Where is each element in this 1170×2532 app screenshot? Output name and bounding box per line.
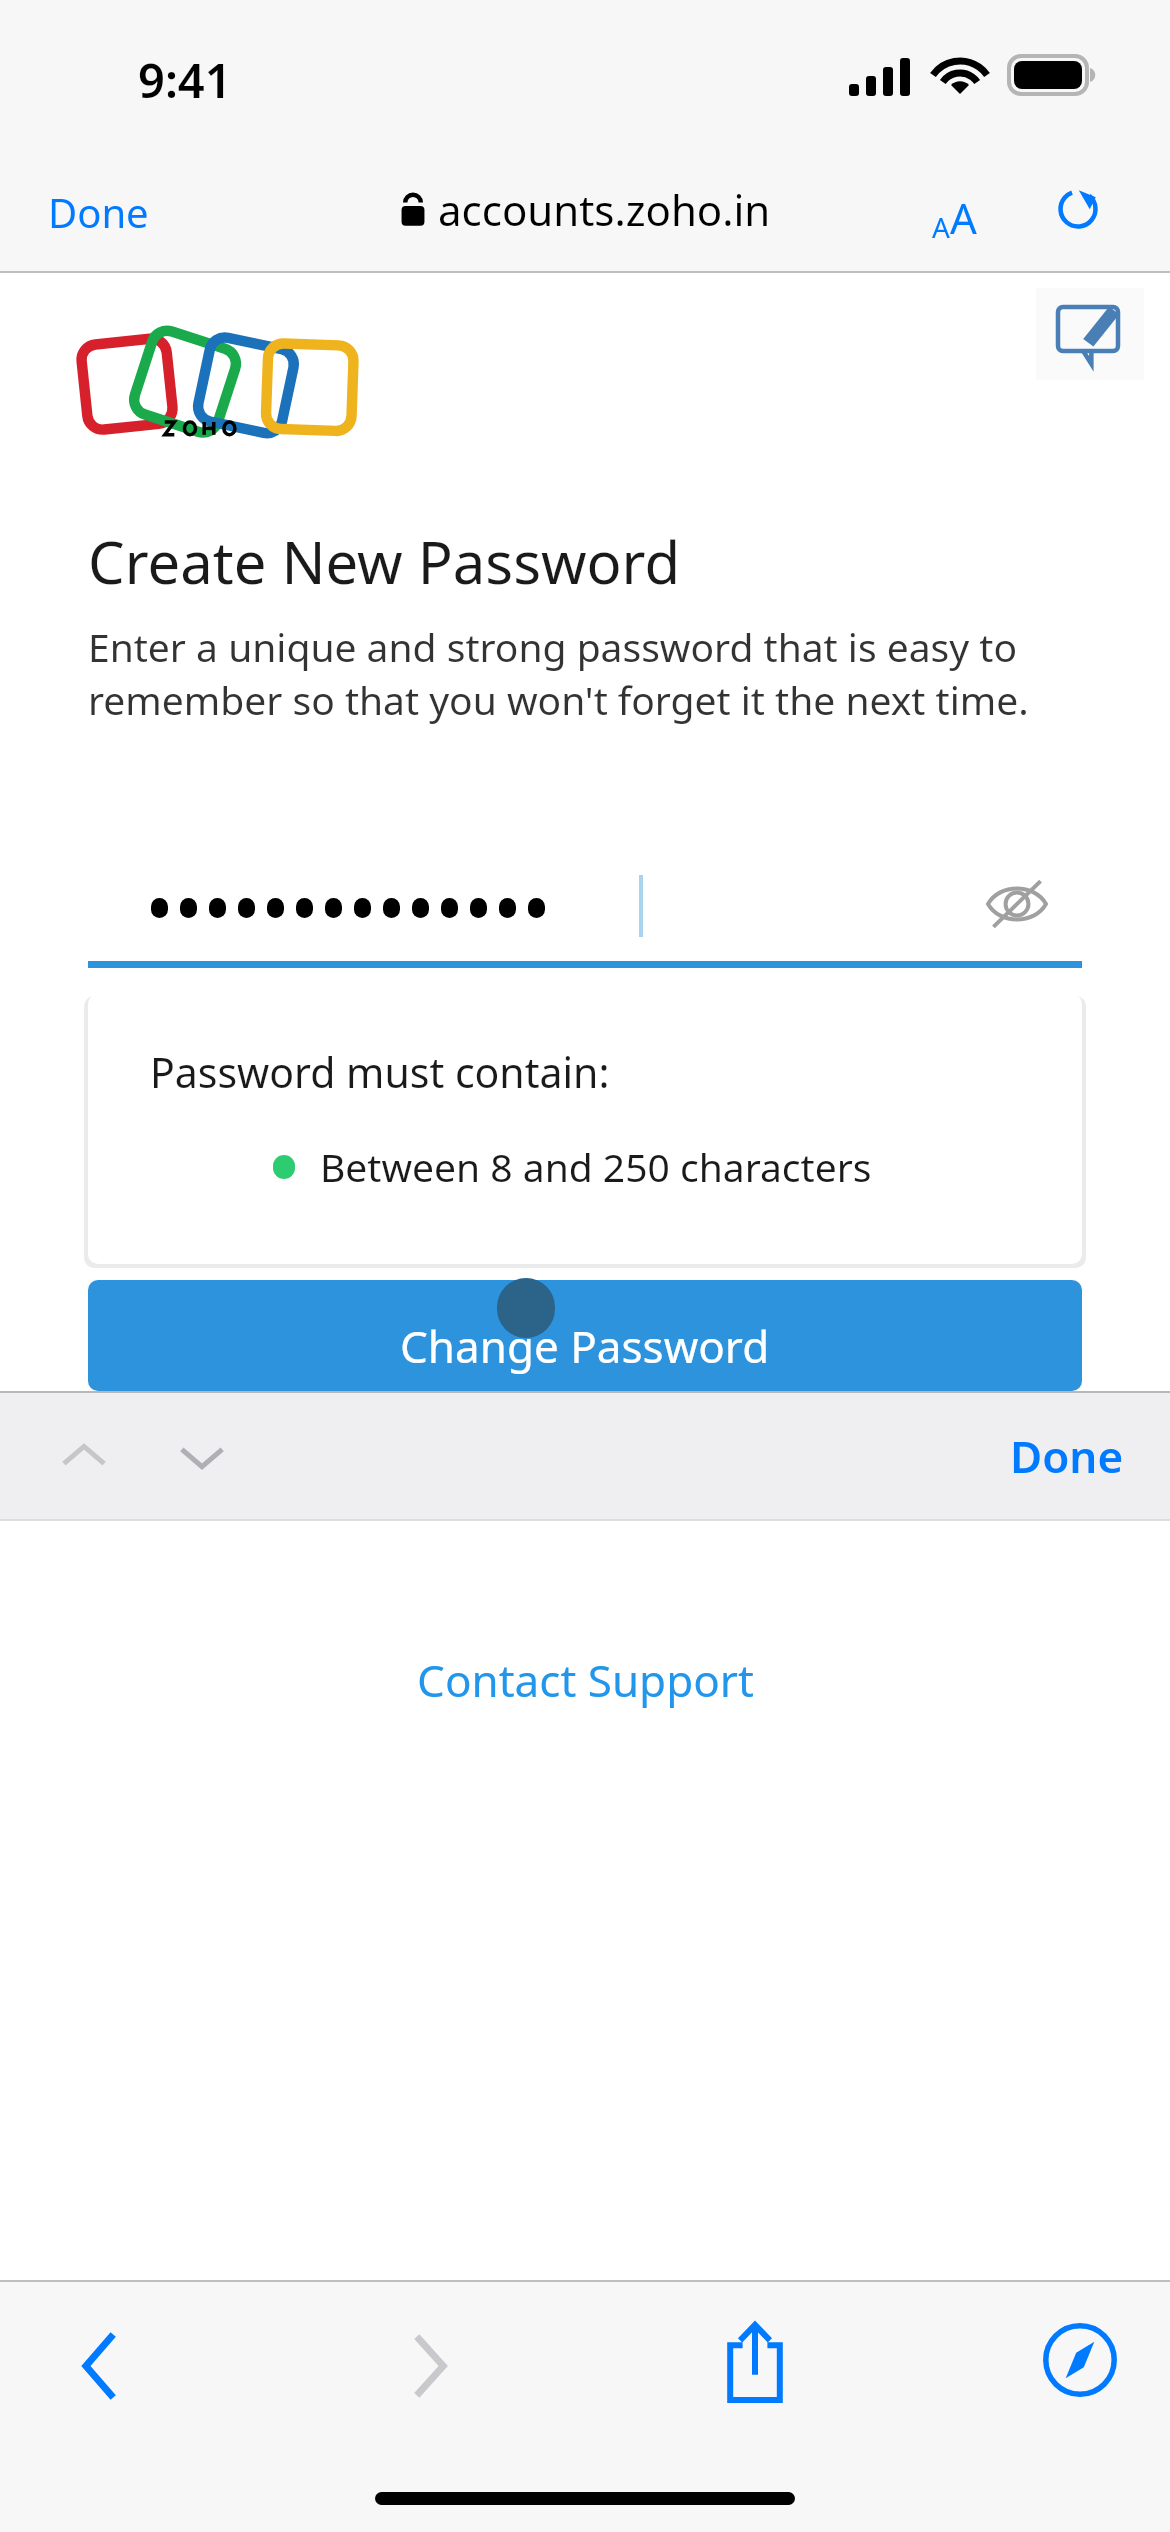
button[interactable]: Tabs — [1020, 2300, 1140, 2420]
button[interactable]: Done — [988, 1410, 1146, 1502]
button[interactable]: Show password — [88, 840, 1082, 968]
button[interactable]: Done — [30, 169, 167, 255]
staticText: Done — [1010, 1426, 1124, 1486]
button[interactable]: Contact Support — [397, 1640, 774, 1720]
button[interactable]: accounts.zoho.in — [386, 171, 785, 248]
staticText: Contact Support — [417, 1650, 754, 1710]
button[interactable]: Reload — [1046, 177, 1110, 241]
button[interactable]: Feedback — [1036, 288, 1144, 380]
staticText: A — [932, 208, 950, 246]
button[interactable]: Forward — [370, 2306, 490, 2426]
staticText: Between 8 and 250 characters — [320, 1140, 872, 1193]
staticText: Password must contain: — [150, 1044, 610, 1100]
staticText: Done — [48, 185, 149, 239]
staticText: accounts.zoho.in — [438, 181, 771, 238]
button[interactable]: Show password — [972, 859, 1062, 949]
staticText: Change Password — [400, 1316, 770, 1376]
button[interactable]: Page settings — [920, 177, 989, 258]
button[interactable]: Next field — [158, 1413, 246, 1501]
button[interactable]: Change Password — [88, 1280, 1082, 1391]
button[interactable]: Share — [690, 2300, 820, 2430]
staticText: 9:41 — [138, 48, 232, 112]
staticText: Create New Password — [88, 522, 681, 601]
staticText: A — [950, 189, 977, 246]
staticText: Enter a unique and strong password that … — [88, 620, 1088, 727]
button[interactable]: Back — [40, 2306, 160, 2426]
button[interactable]: Previous field — [40, 1413, 128, 1501]
